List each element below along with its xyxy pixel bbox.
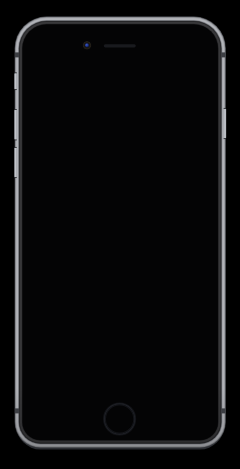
button[interactable]: Smartphone device mockup: [0, 0, 240, 469]
